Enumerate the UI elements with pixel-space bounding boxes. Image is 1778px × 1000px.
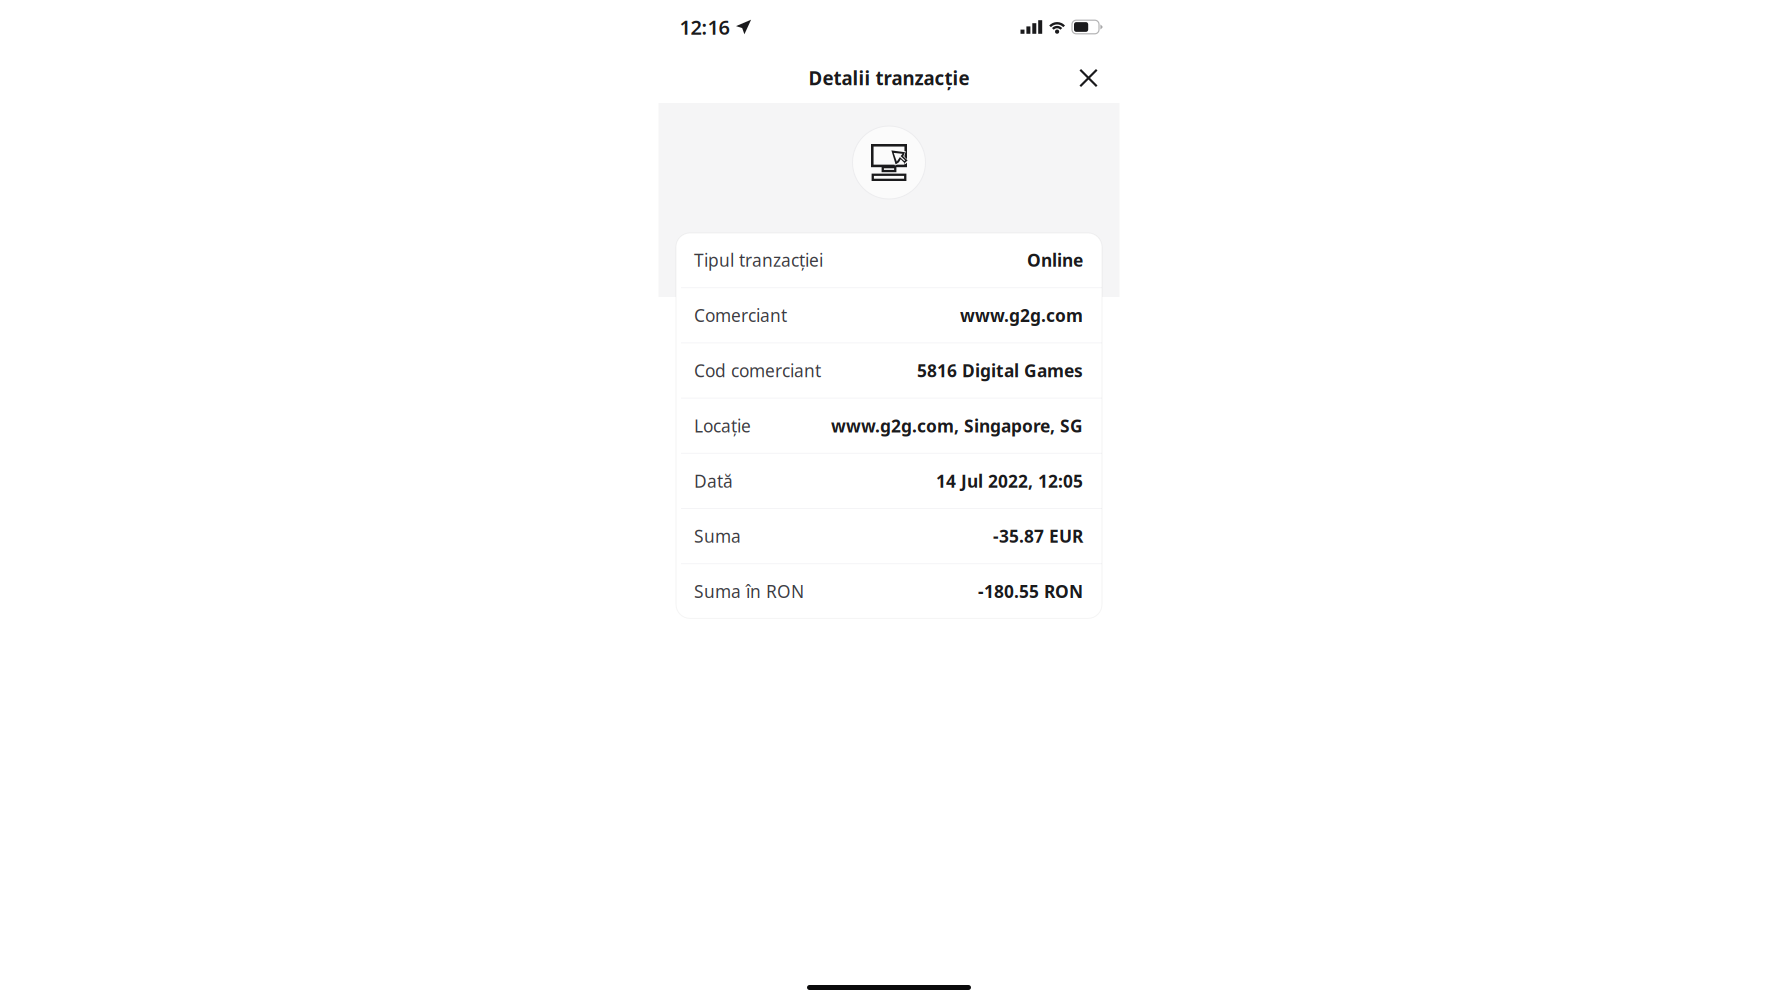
staticText: Detalii tranzacție — [808, 66, 969, 90]
staticText: -180.55 RON — [978, 580, 1083, 603]
staticText: 12:16 — [679, 14, 729, 40]
staticText: Comerciant — [694, 304, 787, 327]
staticText: Cod comerciant — [694, 359, 821, 382]
staticText: 5816 Digital Games — [917, 359, 1083, 382]
staticText: 14 Jul 2022, 12:05 — [936, 469, 1083, 492]
staticText: Suma — [694, 525, 741, 548]
staticText: Suma în RON — [694, 580, 804, 603]
staticText: Online — [1027, 249, 1083, 272]
staticText: Dată — [694, 469, 733, 492]
staticText: www.g2g.com, Singapore, SG — [831, 414, 1083, 437]
button[interactable]: Close — [1066, 56, 1110, 100]
staticText: www.g2g.com — [960, 304, 1083, 327]
staticText: Tipul tranzacției — [694, 249, 823, 272]
staticText: Locație — [694, 414, 751, 437]
staticText: -35.87 EUR — [993, 525, 1083, 548]
